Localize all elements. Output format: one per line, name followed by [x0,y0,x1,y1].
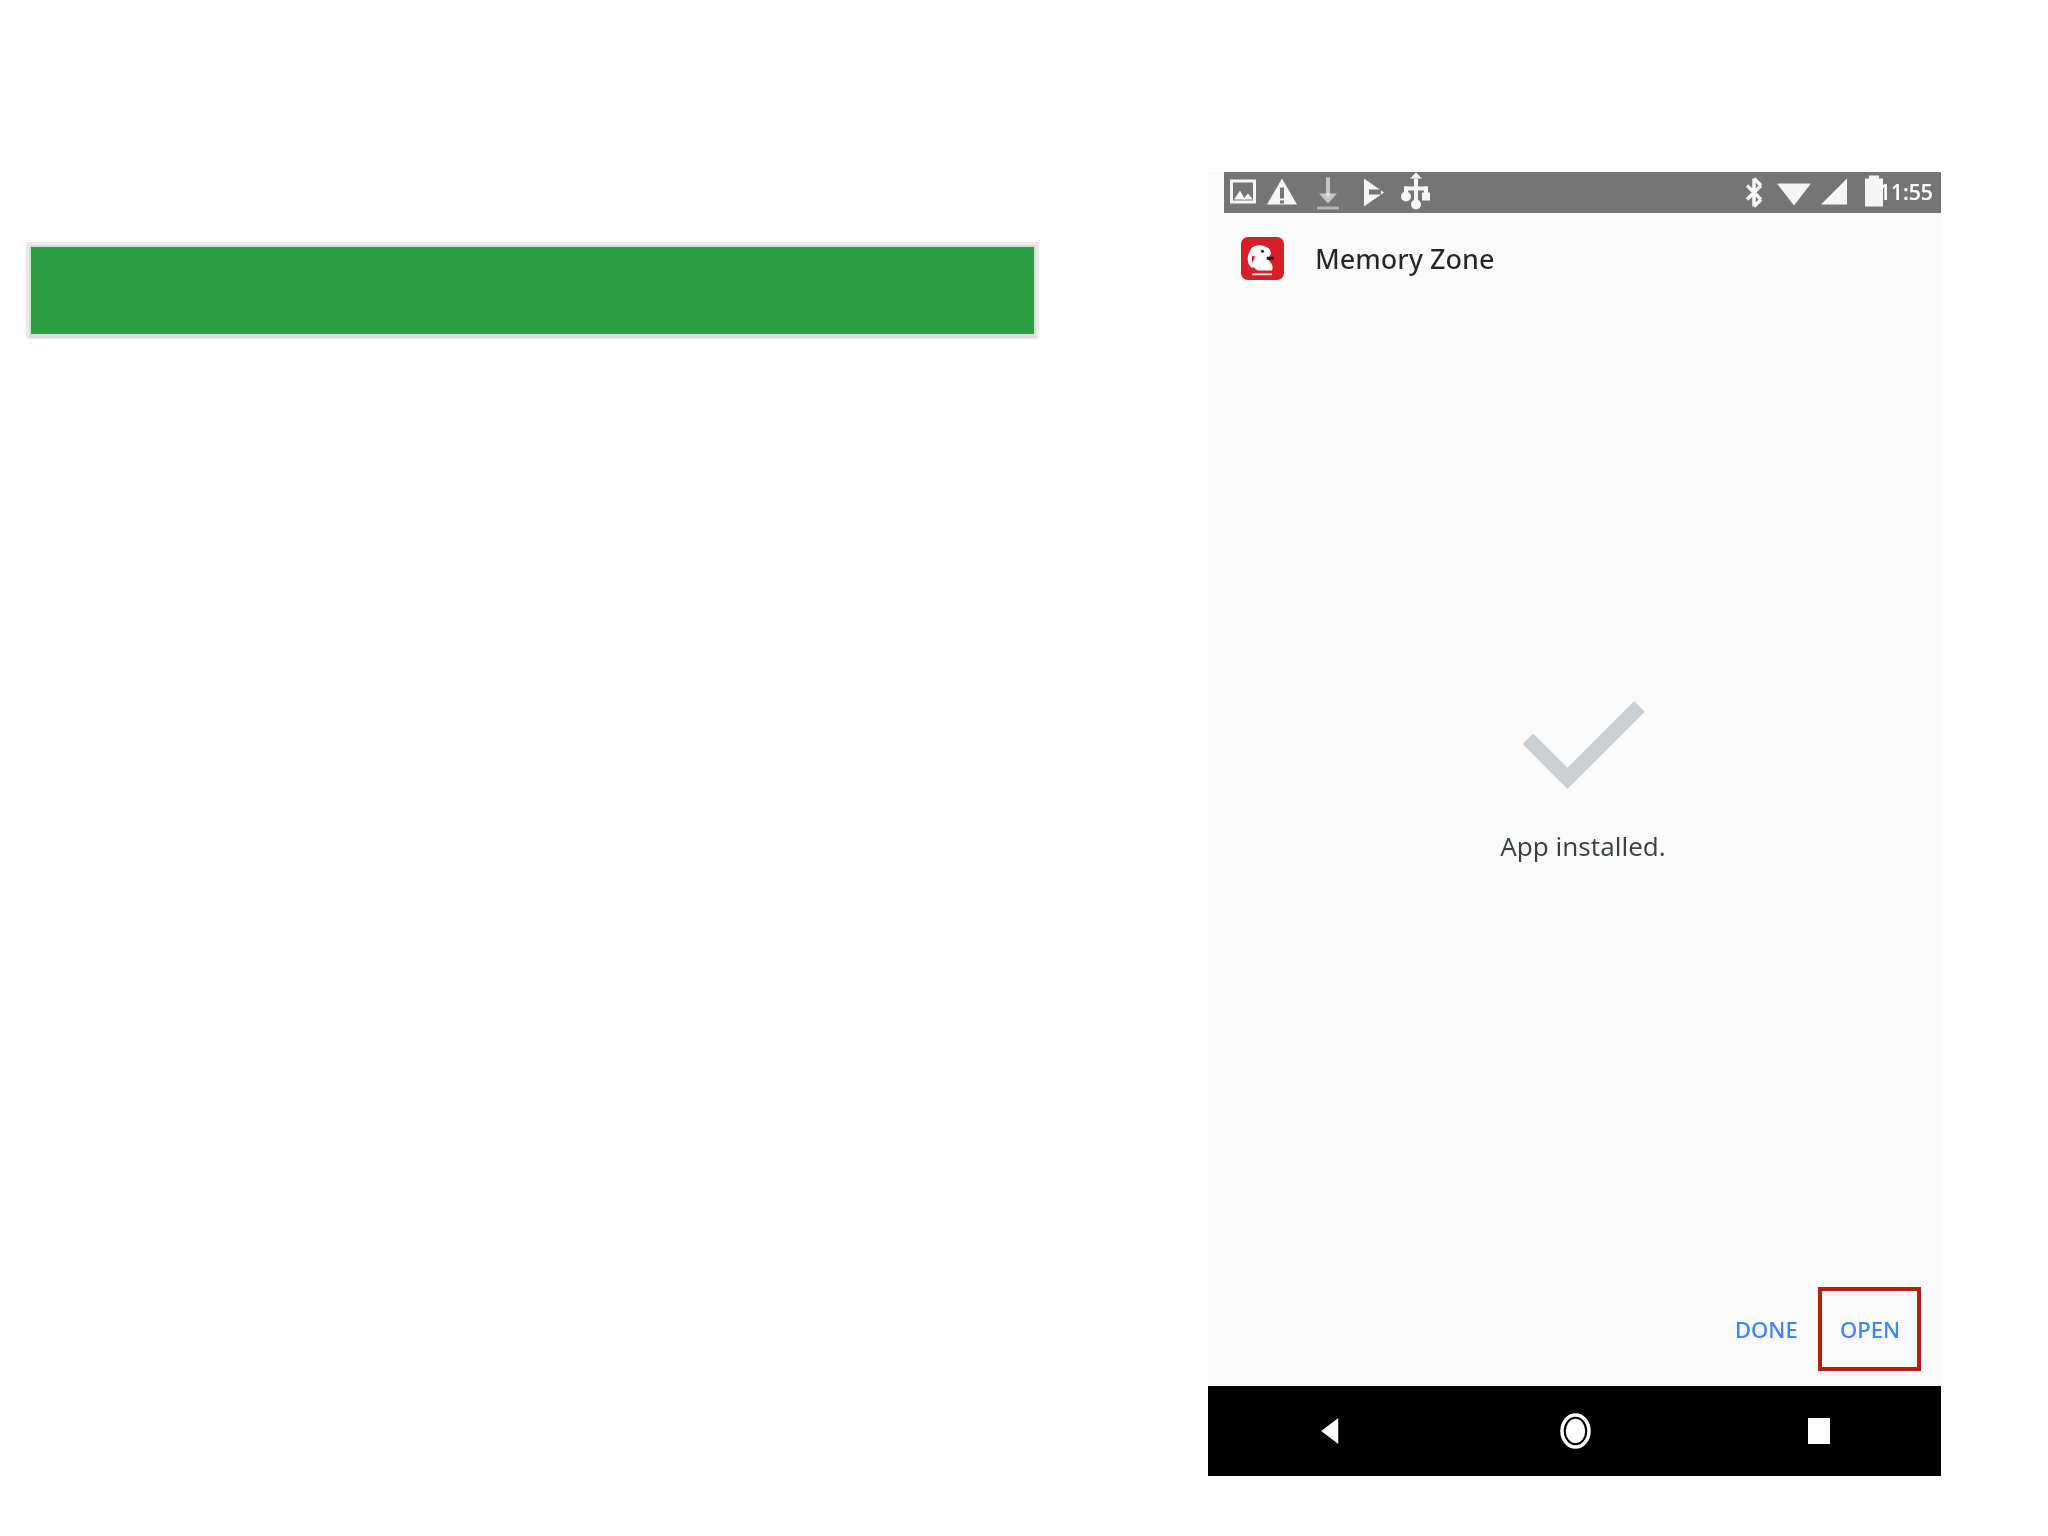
button[interactable]: OPEN [1820,1289,1919,1369]
staticText: App installed. [1500,828,1666,863]
staticText: Memory Zone [1315,240,1495,277]
button[interactable]: DONE [1718,1296,1814,1362]
staticText: DONE [1735,1314,1798,1344]
staticText: OPEN [1840,1314,1900,1344]
button[interactable]: Recent apps [1697,1386,1941,1476]
staticText: 11:55 [1879,178,1933,207]
button[interactable]: Home [1453,1386,1697,1476]
button[interactable]: Back [1208,1386,1453,1476]
